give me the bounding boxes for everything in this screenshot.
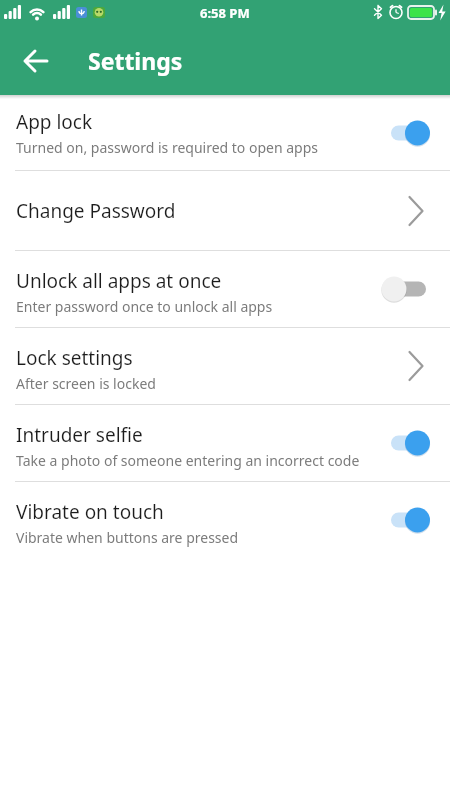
button[interactable]: Intruder selfie bbox=[0, 405, 450, 481]
staticText: App lock bbox=[16, 109, 93, 135]
button[interactable] bbox=[378, 275, 438, 303]
staticText: Vibrate when buttons are pressed bbox=[16, 528, 239, 547]
button[interactable]: Change Password bbox=[0, 171, 450, 250]
staticText: 6:58 PM bbox=[200, 4, 250, 22]
button[interactable]: Unlock all apps at once bbox=[0, 251, 450, 327]
staticText: After screen is locked bbox=[16, 374, 156, 393]
button[interactable]: App lock bbox=[0, 95, 450, 170]
staticText: Vibrate on touch bbox=[16, 499, 164, 525]
staticText: Change Password bbox=[16, 198, 176, 224]
staticText: Take a photo of someone entering an inco… bbox=[16, 451, 360, 470]
staticText: Intruder selfie bbox=[16, 422, 143, 448]
staticText: Enter password once to unlock all apps bbox=[16, 297, 273, 316]
button[interactable] bbox=[378, 506, 438, 534]
staticText: Unlock all apps at once bbox=[16, 268, 222, 294]
staticText: Lock settings bbox=[16, 345, 133, 371]
staticText: Settings bbox=[88, 45, 183, 76]
button[interactable] bbox=[378, 429, 438, 457]
staticText: Turned on, password is required to open … bbox=[16, 138, 319, 157]
button[interactable]: Vibrate on touch bbox=[0, 482, 450, 558]
button[interactable]: Lock settings bbox=[0, 328, 450, 404]
button[interactable] bbox=[14, 39, 58, 83]
button[interactable] bbox=[378, 119, 438, 147]
